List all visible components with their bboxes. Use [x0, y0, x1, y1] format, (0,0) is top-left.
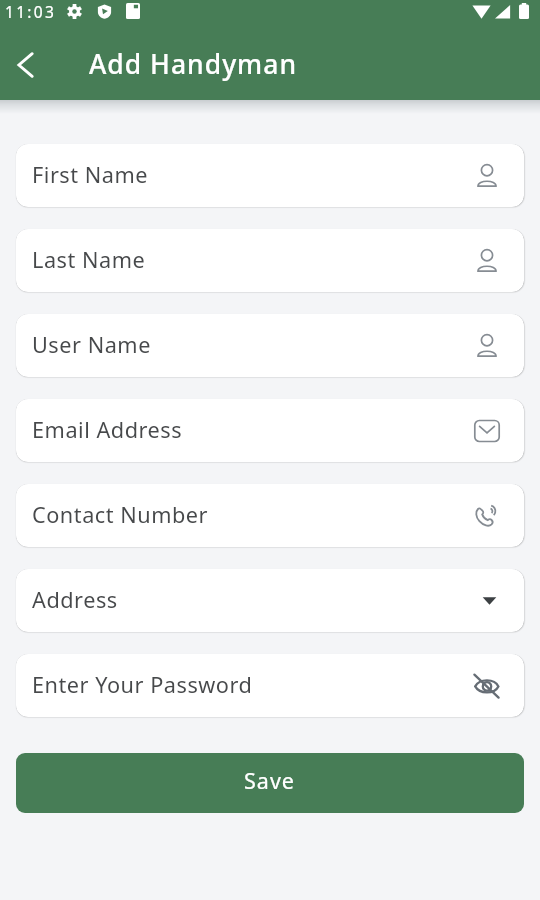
button[interactable]: Save: [16, 753, 524, 813]
staticText: Last Name: [32, 245, 146, 275]
staticText: User Name: [32, 330, 151, 360]
staticText: Contact Number: [32, 500, 209, 530]
button[interactable]: Address: [16, 569, 524, 632]
button[interactable]: User Name: [16, 314, 524, 377]
button[interactable]: Last Name: [16, 229, 524, 292]
staticText: Save: [244, 766, 295, 795]
staticText: Enter Your Password: [32, 670, 253, 700]
button[interactable]: Contact Number: [16, 484, 524, 547]
staticText: Email Address: [32, 415, 183, 445]
staticText: 11:03: [5, 1, 57, 22]
staticText: First Name: [32, 160, 149, 190]
button[interactable]: Back: [0, 40, 50, 90]
button[interactable]: Enter Your Password: [16, 654, 524, 717]
button[interactable]: Email Address: [16, 399, 524, 462]
staticText: Address: [32, 585, 118, 615]
button[interactable]: First Name: [16, 144, 524, 207]
staticText: Add Handyman: [89, 46, 297, 82]
